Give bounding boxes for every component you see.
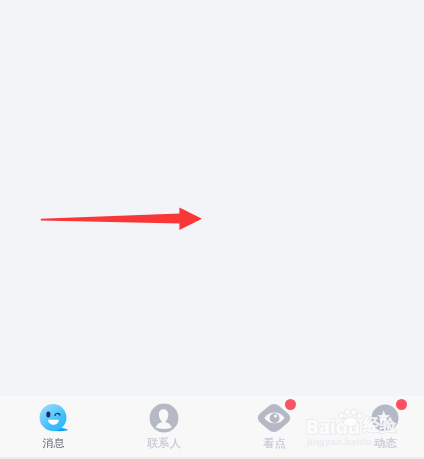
staticText: 经验 xyxy=(363,415,396,436)
staticText: Baidu xyxy=(306,414,361,440)
button[interactable]: 看点 xyxy=(221,396,327,459)
staticText: 联系人 xyxy=(147,436,181,450)
staticText: jingyan.baidu.com xyxy=(307,435,395,448)
staticText: 经验 xyxy=(363,415,396,436)
staticText: 动态 xyxy=(374,436,397,450)
button[interactable]: 消息 xyxy=(0,396,106,459)
staticText: 看点 xyxy=(263,436,286,450)
staticText: 消息 xyxy=(42,436,65,450)
staticText: Baidu xyxy=(306,414,361,440)
button[interactable]: 动态 xyxy=(332,396,424,459)
button[interactable]: 联系人 xyxy=(111,396,217,459)
